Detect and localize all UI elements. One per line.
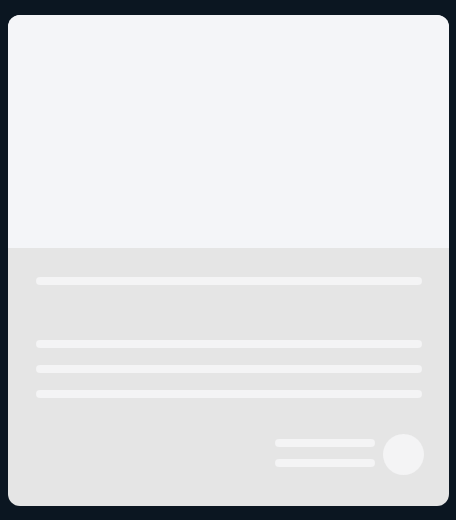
- other: Avatar placeholder: [383, 434, 424, 475]
- button[interactable]: Avatar placeholder: [8, 15, 449, 506]
